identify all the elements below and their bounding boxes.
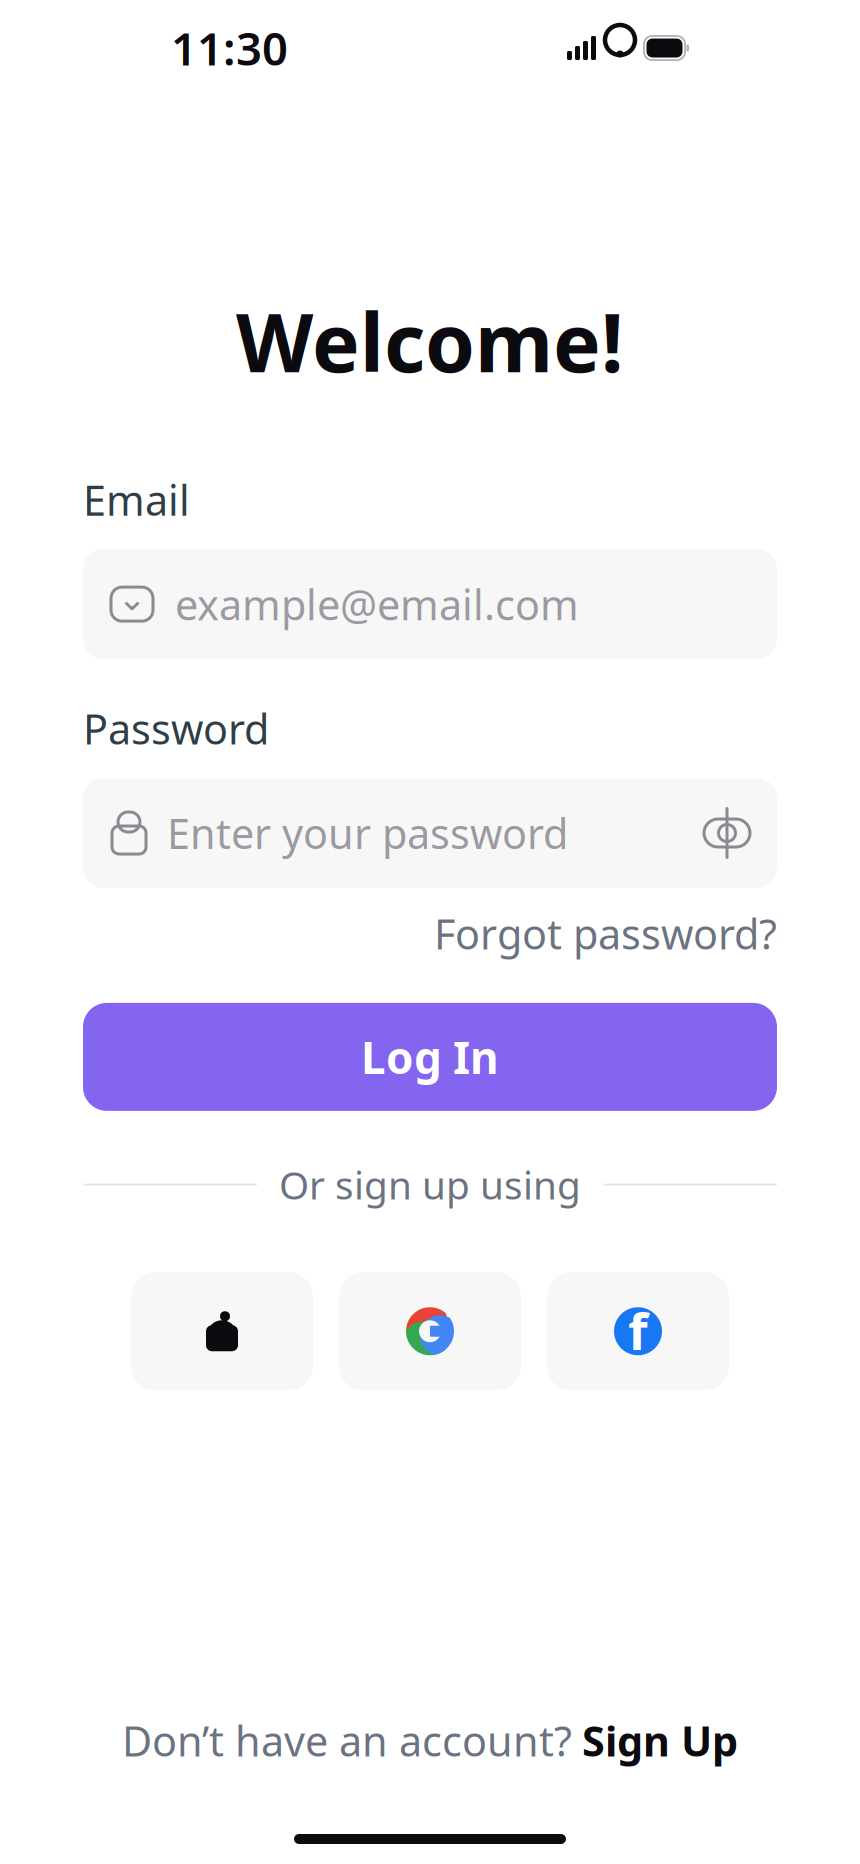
staticText: 11:30 (171, 18, 288, 78)
button[interactable]: Don’t have an account? (122, 1713, 738, 1768)
staticText: Enter your password (167, 806, 568, 860)
staticText: Email (83, 472, 190, 527)
staticText: Password (83, 701, 269, 756)
button[interactable]: ⌄ (83, 549, 777, 659)
staticText: Sign Up (582, 1713, 738, 1768)
button[interactable]: Sign up with Google (339, 1272, 521, 1390)
staticText: ⌄ (117, 578, 146, 618)
staticText: example@email.com (175, 577, 579, 632)
staticText: Welcome! (236, 288, 624, 394)
button[interactable]: Log In (83, 1003, 777, 1111)
button[interactable]: Sign up with Apple (131, 1272, 313, 1390)
button[interactable]: Enter your password (83, 778, 777, 888)
button[interactable]: Forgot password? (434, 906, 777, 961)
staticText: Don’t have an account? (122, 1713, 572, 1768)
staticText: Log In (361, 1028, 499, 1086)
button[interactable]: Sign up with Facebook (547, 1272, 729, 1390)
staticText: Or sign up using (279, 1159, 581, 1210)
staticText: f (628, 1297, 648, 1364)
staticText: Forgot password? (434, 906, 777, 961)
